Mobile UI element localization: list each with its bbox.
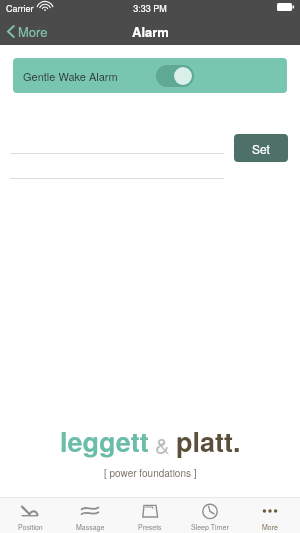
button[interactable]: Gentle Wake Alarm	[13, 58, 287, 93]
staticText: &	[149, 429, 176, 461]
staticText: More	[18, 22, 48, 41]
staticText: Massage	[76, 522, 105, 532]
staticText: Alarm	[132, 22, 169, 41]
staticText: 3:33 PM	[0, 2, 300, 15]
staticText: [ power foundations ]	[104, 466, 197, 480]
button[interactable]: Presets	[120, 497, 180, 533]
button[interactable]: Position	[0, 497, 60, 533]
button[interactable]: More	[240, 497, 300, 533]
staticText: Position	[18, 522, 43, 532]
button[interactable]: Massage	[60, 497, 120, 533]
staticText: Carrier	[6, 2, 34, 15]
staticText: Set	[252, 140, 270, 157]
staticText: Presets	[138, 522, 162, 532]
staticText: platt.	[176, 422, 241, 461]
staticText: Gentle Wake Alarm	[23, 68, 118, 84]
staticText: leggett	[60, 422, 149, 461]
staticText: Sleep Timer	[191, 522, 229, 532]
staticText: More	[262, 522, 278, 532]
button[interactable]: More	[0, 17, 56, 45]
button[interactable]: Set	[234, 134, 288, 162]
button[interactable]: Sleep Timer	[180, 497, 240, 533]
